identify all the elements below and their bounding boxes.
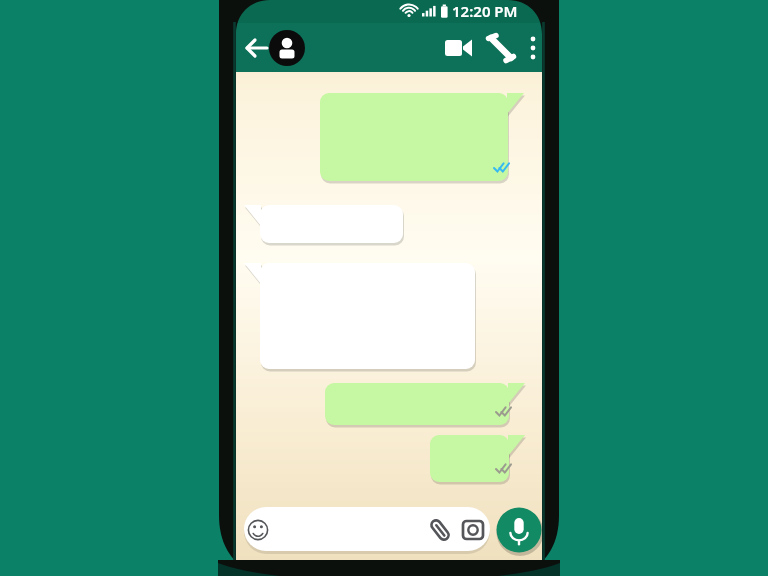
staticText: 12:20 PM <box>452 1 518 21</box>
button[interactable]: Received message <box>244 263 475 371</box>
button[interactable]: Video call <box>438 26 480 72</box>
button[interactable]: Voice call <box>482 26 522 72</box>
button[interactable]: Received message <box>244 205 403 247</box>
button[interactable]: Message input <box>278 508 420 552</box>
button[interactable]: Sent message <box>430 435 524 483</box>
button[interactable]: Attach file <box>422 510 456 552</box>
button[interactable]: Emoji <box>238 510 278 552</box>
button[interactable]: Back <box>238 26 280 72</box>
button[interactable]: Contact profile <box>261 24 311 74</box>
button[interactable]: Sent message <box>325 383 525 427</box>
button[interactable]: Record voice message <box>496 505 544 555</box>
button[interactable]: Camera <box>456 510 492 552</box>
button[interactable]: Sent message <box>320 93 524 183</box>
button[interactable]: More options <box>522 26 544 72</box>
